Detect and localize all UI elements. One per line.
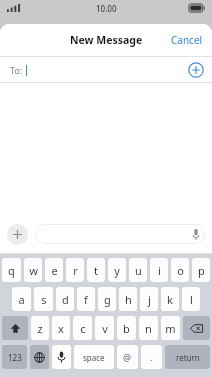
button[interactable]: . <box>141 345 162 369</box>
staticText: x <box>58 321 64 336</box>
button[interactable]: g <box>98 287 116 311</box>
staticText: u <box>135 263 142 278</box>
staticText: m <box>165 321 176 336</box>
button[interactable]: d <box>56 287 74 311</box>
button[interactable]: Add contact <box>188 62 204 78</box>
button[interactable]: Cancel <box>162 27 212 53</box>
staticText: b <box>123 321 130 336</box>
button[interactable]: w <box>24 258 42 282</box>
staticText: a <box>18 292 25 307</box>
staticText: 123 <box>8 352 22 363</box>
button[interactable]: e <box>45 258 63 282</box>
staticText: f <box>84 292 88 307</box>
button[interactable]: z <box>31 316 49 340</box>
button[interactable]: Switch keyboard <box>30 345 49 369</box>
button[interactable]: Shift <box>2 316 28 340</box>
staticText: w <box>29 263 38 278</box>
button[interactable]: x <box>52 316 70 340</box>
button[interactable]: k <box>161 287 179 311</box>
button[interactable]: Numbers <box>2 345 27 369</box>
staticText: r <box>73 263 78 278</box>
button[interactable]: u <box>129 258 147 282</box>
staticText: p <box>198 263 205 278</box>
staticText: o <box>177 263 184 278</box>
staticText: k <box>167 292 173 307</box>
staticText: . <box>150 351 153 363</box>
staticText: Cancel <box>171 33 203 47</box>
button[interactable]: s <box>34 287 53 311</box>
staticText: d <box>62 292 69 307</box>
staticText: c <box>80 321 86 336</box>
staticText: @ <box>123 351 132 363</box>
button[interactable]: v <box>95 316 114 340</box>
button[interactable]: n <box>139 316 158 340</box>
staticText: n <box>145 321 152 336</box>
staticText: s <box>41 292 47 307</box>
button[interactable]: h <box>119 287 137 311</box>
button[interactable]: p <box>192 258 210 282</box>
staticText: h <box>125 292 132 307</box>
staticText: 10.00 <box>96 3 117 14</box>
staticText: v <box>102 321 108 336</box>
staticText: return <box>176 352 200 363</box>
staticText: To: <box>10 64 23 76</box>
staticText: e <box>51 263 58 278</box>
staticText: z <box>37 321 43 336</box>
button[interactable]: f <box>77 287 95 311</box>
staticText: g <box>104 292 111 307</box>
button[interactable]: m <box>161 316 180 340</box>
button[interactable]: Backspace <box>183 316 210 340</box>
button[interactable]: j <box>140 287 158 311</box>
button[interactable]: Add attachment <box>7 224 28 245</box>
button[interactable]: return <box>165 345 210 369</box>
button[interactable]: l <box>182 287 200 311</box>
button[interactable]: To: <box>0 57 212 82</box>
staticText: t <box>94 263 98 278</box>
button[interactable]: @ <box>117 345 138 369</box>
button[interactable]: o <box>171 258 189 282</box>
button[interactable]: r <box>66 258 84 282</box>
button[interactable]: y <box>108 258 126 282</box>
button[interactable]: i <box>150 258 168 282</box>
button[interactable] <box>35 224 205 244</box>
staticText: l <box>190 292 193 307</box>
button[interactable]: a <box>12 287 31 311</box>
staticText: space <box>83 352 105 363</box>
button[interactable]: Dictate <box>52 345 71 369</box>
button[interactable]: b <box>117 316 136 340</box>
staticText: q <box>8 263 15 278</box>
staticText: j <box>148 292 151 307</box>
button[interactable]: t <box>87 258 105 282</box>
staticText: New Message <box>70 33 143 47</box>
button[interactable]: space <box>74 345 114 369</box>
staticText: y <box>114 263 120 278</box>
staticText: i <box>158 263 161 278</box>
button[interactable]: q <box>2 258 21 282</box>
button[interactable]: c <box>73 316 92 340</box>
